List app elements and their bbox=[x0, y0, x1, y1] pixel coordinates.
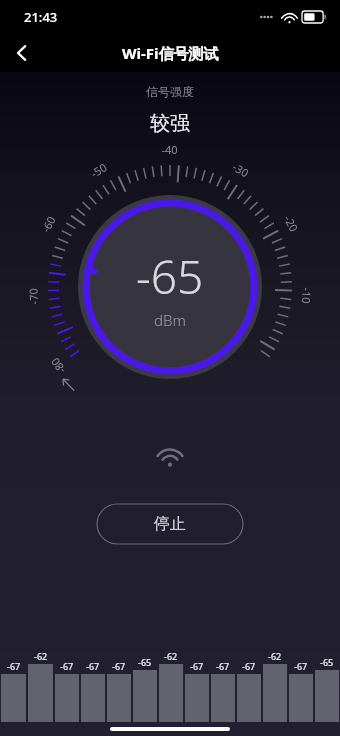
staticText: -67 bbox=[216, 660, 230, 672]
staticText: -62 bbox=[268, 650, 282, 662]
staticText: dBm bbox=[154, 310, 186, 330]
staticText: -67 bbox=[7, 660, 21, 672]
staticText: 较强 bbox=[150, 111, 190, 136]
staticText: Wi-Fi信号测试 bbox=[122, 43, 219, 63]
staticText: 信号强度 bbox=[146, 84, 194, 99]
staticText: 停止 bbox=[154, 514, 186, 534]
staticText: -65 bbox=[136, 245, 204, 308]
button[interactable]: Back bbox=[0, 34, 44, 72]
staticText: -67 bbox=[112, 660, 126, 672]
staticText: -67 bbox=[86, 660, 100, 672]
staticText: -67 bbox=[294, 660, 308, 672]
staticText: -65 bbox=[138, 656, 152, 668]
staticText: -62 bbox=[164, 650, 178, 662]
button[interactable]: 停止 bbox=[96, 503, 244, 545]
staticText: -67 bbox=[60, 660, 74, 672]
staticText: -67 bbox=[242, 660, 256, 672]
staticText: -67 bbox=[190, 660, 204, 672]
staticText: -65 bbox=[320, 656, 334, 668]
staticText: -62 bbox=[34, 650, 48, 662]
staticText: 21:43 bbox=[24, 8, 58, 26]
